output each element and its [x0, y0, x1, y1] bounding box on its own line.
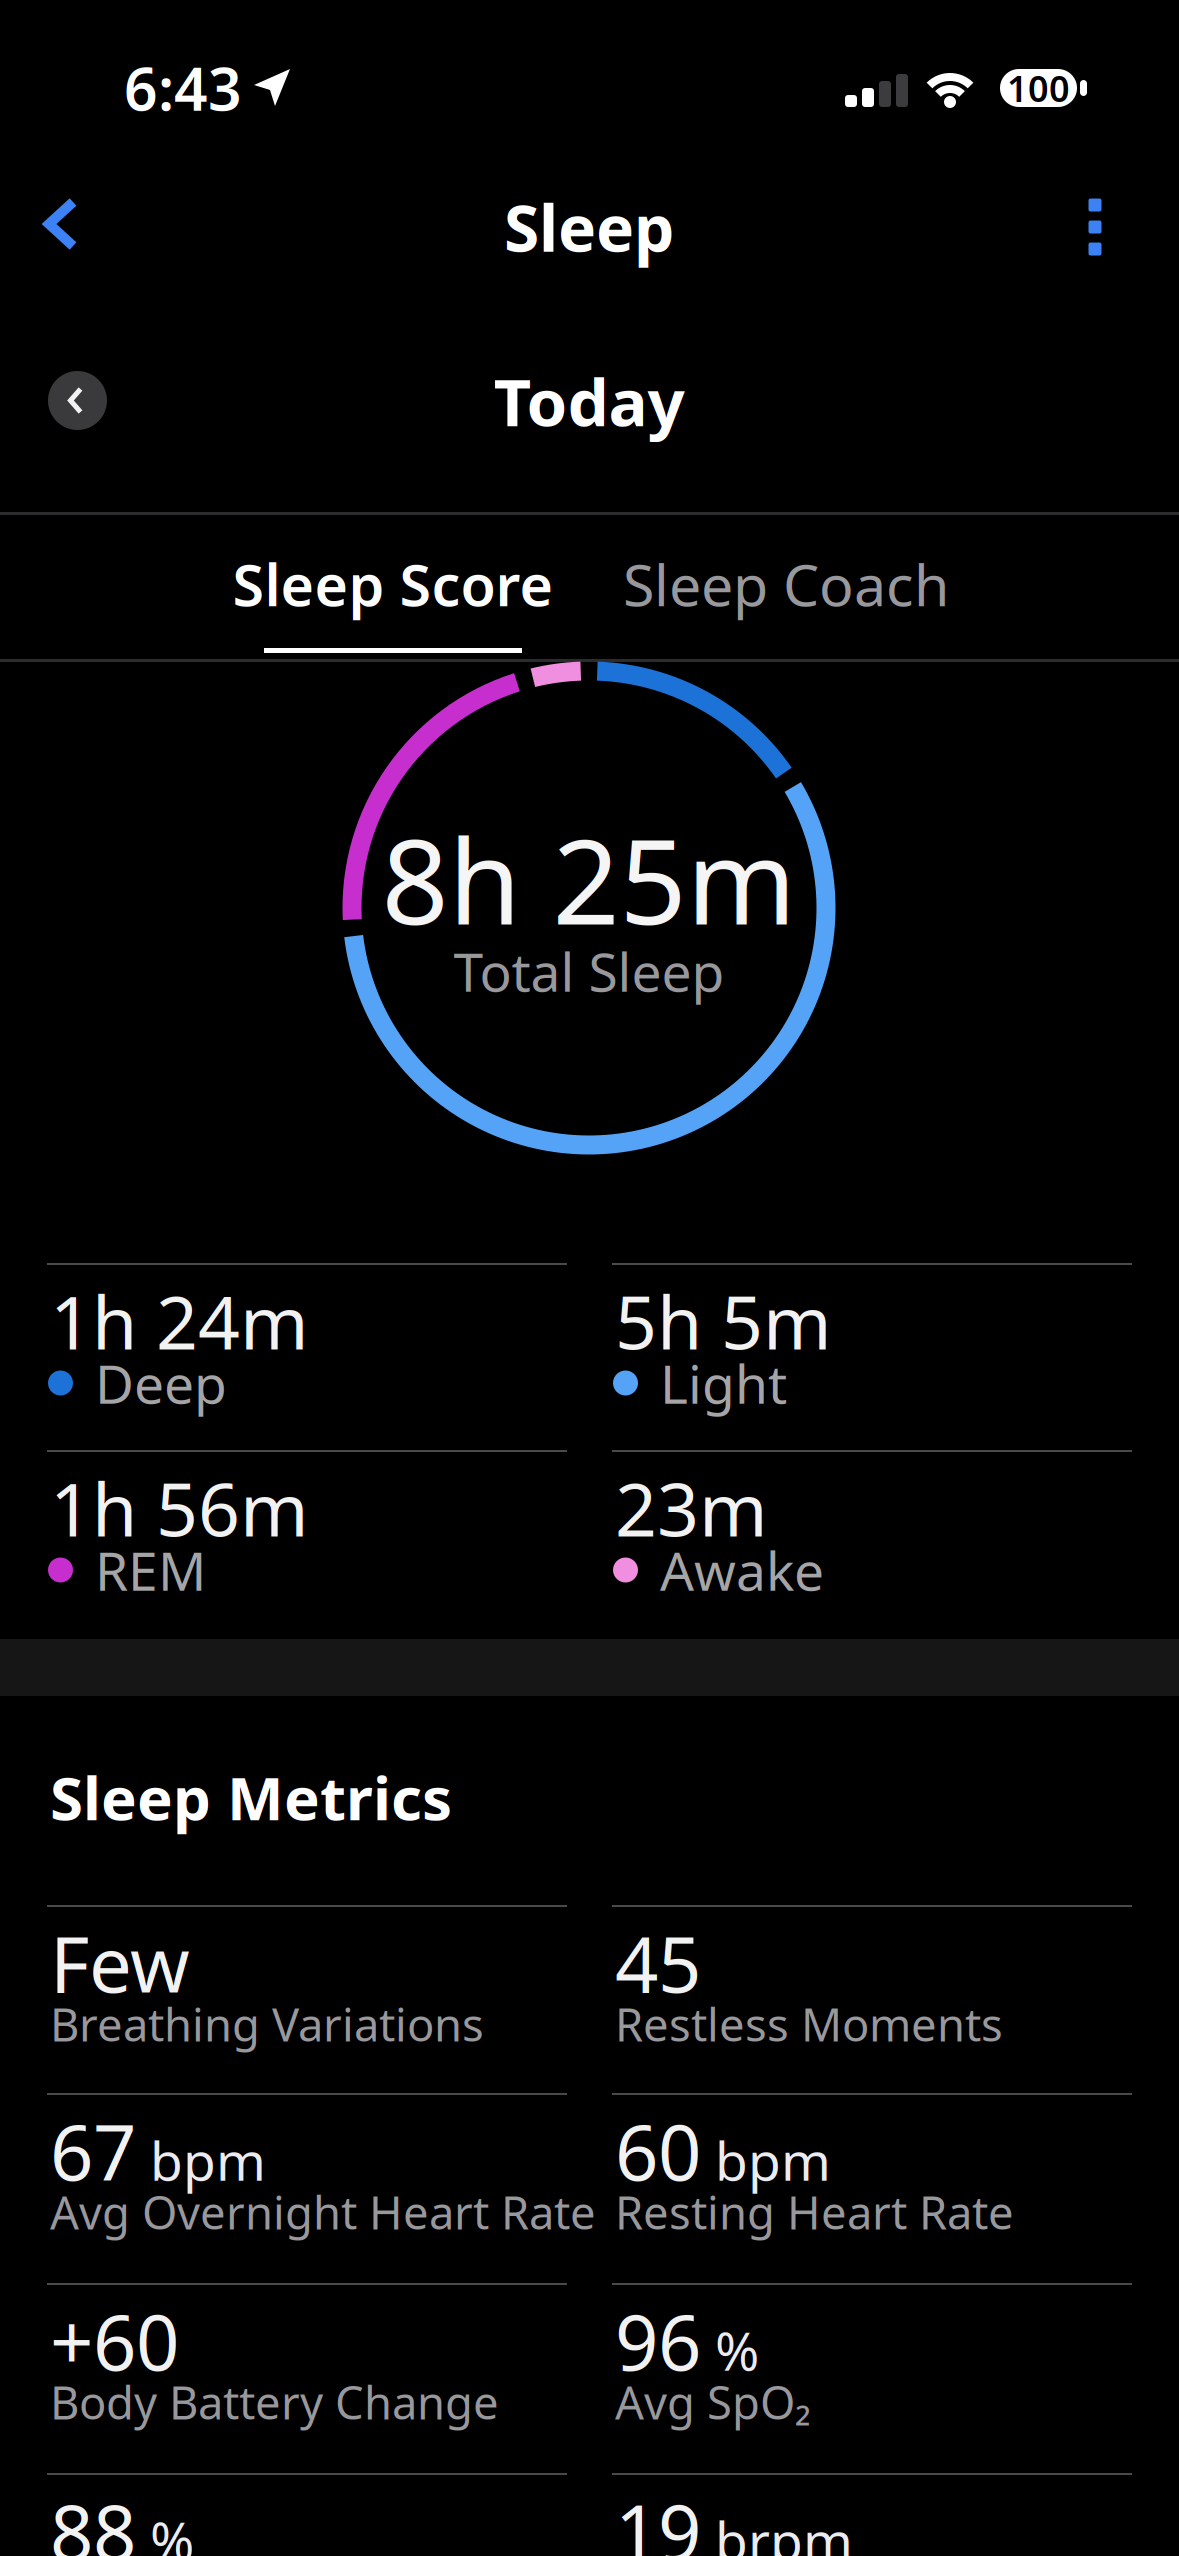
- staticText: Light: [660, 1348, 787, 1418]
- button[interactable]: Sleep Coach: [589, 540, 982, 628]
- button[interactable]: Previous day: [48, 371, 107, 430]
- staticText: Today: [493, 358, 684, 444]
- staticText: 88: [50, 2480, 136, 2556]
- staticText: Awake: [660, 1535, 824, 1605]
- staticText: Breathing Variations: [50, 1994, 484, 2054]
- staticText: 100: [1007, 64, 1070, 112]
- staticText: 6:43: [124, 49, 242, 127]
- staticText: 60: [615, 2100, 701, 2201]
- staticText: 1h 24m: [50, 1272, 309, 1370]
- staticText: 5h 5m: [615, 1272, 832, 1370]
- staticText: Avg Overnight Heart Rate: [50, 2182, 596, 2242]
- staticText: brpm: [715, 2505, 853, 2556]
- button[interactable]: Sleep Score: [196, 540, 589, 628]
- staticText: bpm: [150, 2125, 266, 2195]
- staticText: 8h 25m: [381, 801, 796, 957]
- staticText: Resting Heart Rate: [615, 2182, 1014, 2242]
- staticText: Restless Moments: [615, 1994, 1003, 2054]
- staticText: 19: [615, 2480, 701, 2556]
- staticText: bpm: [715, 2125, 831, 2195]
- staticText: Avg SpO₂: [615, 2372, 811, 2432]
- staticText: 1h 56m: [50, 1459, 309, 1557]
- staticText: %: [150, 2505, 194, 2556]
- staticText: Few: [50, 1912, 190, 2013]
- staticText: 23m: [615, 1459, 768, 1557]
- button[interactable]: More options: [1065, 187, 1125, 267]
- staticText: Sleep Score: [232, 546, 553, 622]
- staticText: +60: [50, 2290, 179, 2391]
- staticText: 67: [50, 2100, 136, 2201]
- staticText: Deep: [95, 1348, 227, 1418]
- staticText: 45: [615, 1912, 701, 2013]
- staticText: 96: [615, 2290, 701, 2391]
- staticText: Sleep Metrics: [50, 1757, 452, 1837]
- staticText: %: [715, 2315, 759, 2385]
- staticText: Sleep Coach: [623, 546, 949, 622]
- staticText: Sleep: [504, 184, 674, 269]
- staticText: Total Sleep: [453, 936, 724, 1006]
- staticText: Body Battery Change: [50, 2372, 499, 2432]
- staticText: REM: [95, 1535, 206, 1605]
- button[interactable]: Back: [21, 184, 101, 264]
